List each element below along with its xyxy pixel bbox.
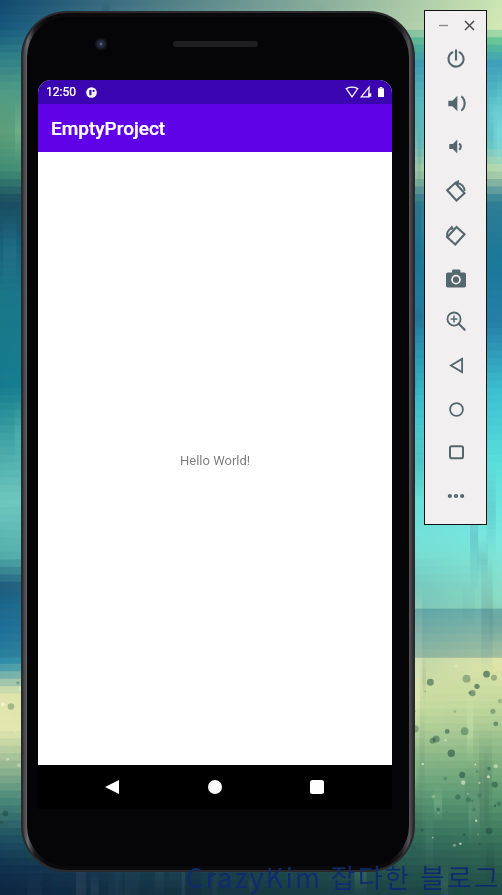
button[interactable]: Close <box>458 15 480 36</box>
button[interactable]: Recent apps <box>297 767 337 807</box>
button[interactable]: Volume down <box>435 131 477 161</box>
staticText: 12:50 <box>46 85 76 99</box>
button[interactable]: Overview <box>435 437 477 467</box>
button[interactable]: Rotate left <box>435 175 477 205</box>
staticText: EmptyProject <box>51 117 166 139</box>
staticText: Hello World! <box>180 453 251 468</box>
button[interactable]: Minimize <box>432 15 454 36</box>
staticText: CrazyKim 잡다한 블로그 <box>186 857 502 895</box>
button[interactable]: Zoom <box>435 306 477 336</box>
button[interactable]: Take screenshot <box>435 263 477 293</box>
button[interactable]: Rotate right <box>435 219 477 249</box>
button[interactable]: More <box>435 481 477 511</box>
button[interactable]: Home <box>195 767 235 807</box>
button[interactable]: Back <box>435 350 477 380</box>
button[interactable]: Power <box>435 44 477 74</box>
button[interactable]: Back <box>92 767 132 807</box>
button[interactable]: Home <box>435 394 477 424</box>
button[interactable]: Volume up <box>435 88 477 118</box>
